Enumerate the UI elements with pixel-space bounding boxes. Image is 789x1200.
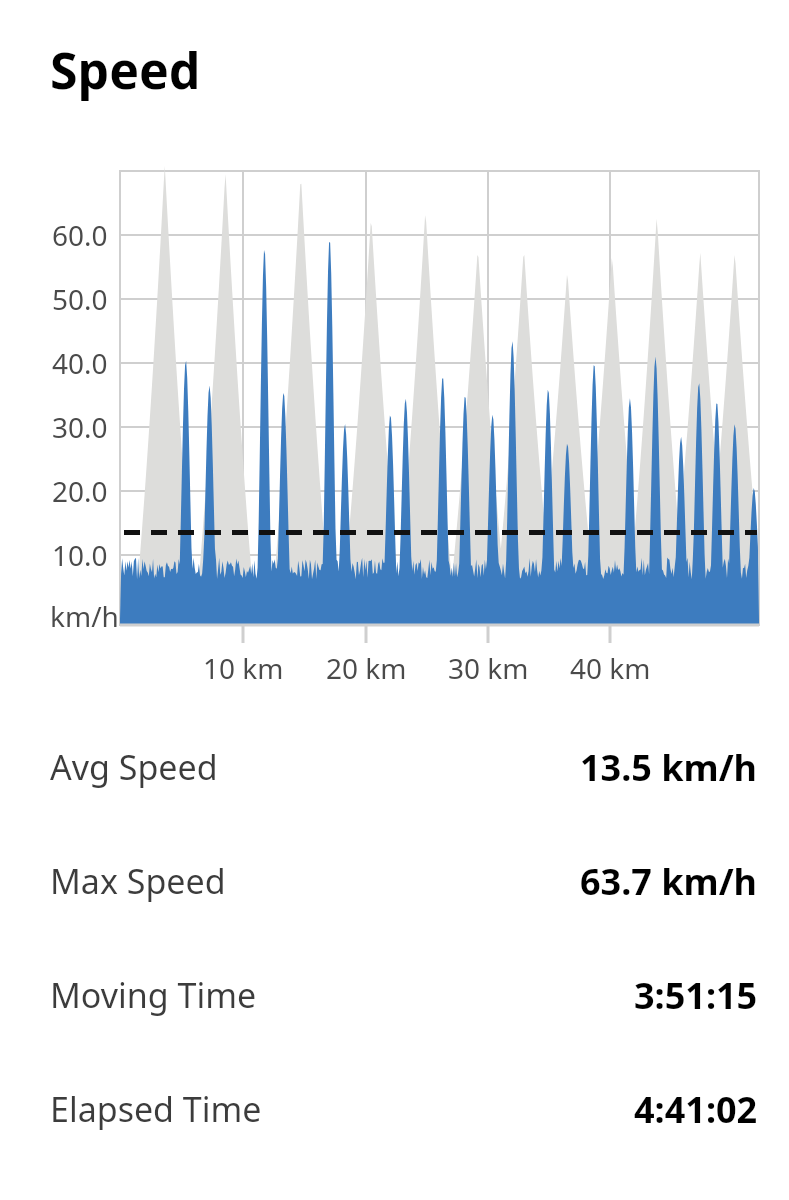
- staticText: 4:41:02: [634, 1085, 758, 1134]
- button[interactable]: Elapsed Time: [0, 1052, 789, 1166]
- staticText: 40 km: [570, 649, 651, 687]
- staticText: 40.0: [52, 344, 108, 382]
- button[interactable]: Moving Time: [0, 938, 789, 1052]
- staticText: 30.0: [52, 408, 108, 446]
- staticText: 3:51:15: [634, 971, 758, 1020]
- staticText: km/h: [50, 597, 119, 635]
- staticText: 13.5 km/h: [580, 743, 758, 792]
- staticText: Moving Time: [50, 972, 257, 1018]
- staticText: 30 km: [448, 649, 529, 687]
- staticText: Avg Speed: [50, 744, 218, 790]
- staticText: Elapsed Time: [50, 1086, 262, 1132]
- staticText: 20 km: [326, 649, 407, 687]
- staticText: 10 km: [203, 649, 284, 687]
- staticText: Speed: [50, 36, 201, 104]
- button[interactable]: Max Speed: [0, 824, 789, 938]
- staticText: 10.0: [52, 536, 108, 574]
- button[interactable]: Avg Speed: [0, 710, 789, 824]
- staticText: Max Speed: [50, 858, 226, 904]
- staticText: 20.0: [52, 472, 108, 510]
- staticText: 63.7 km/h: [580, 857, 758, 906]
- staticText: 60.0: [52, 216, 108, 254]
- staticText: 50.0: [52, 280, 108, 318]
